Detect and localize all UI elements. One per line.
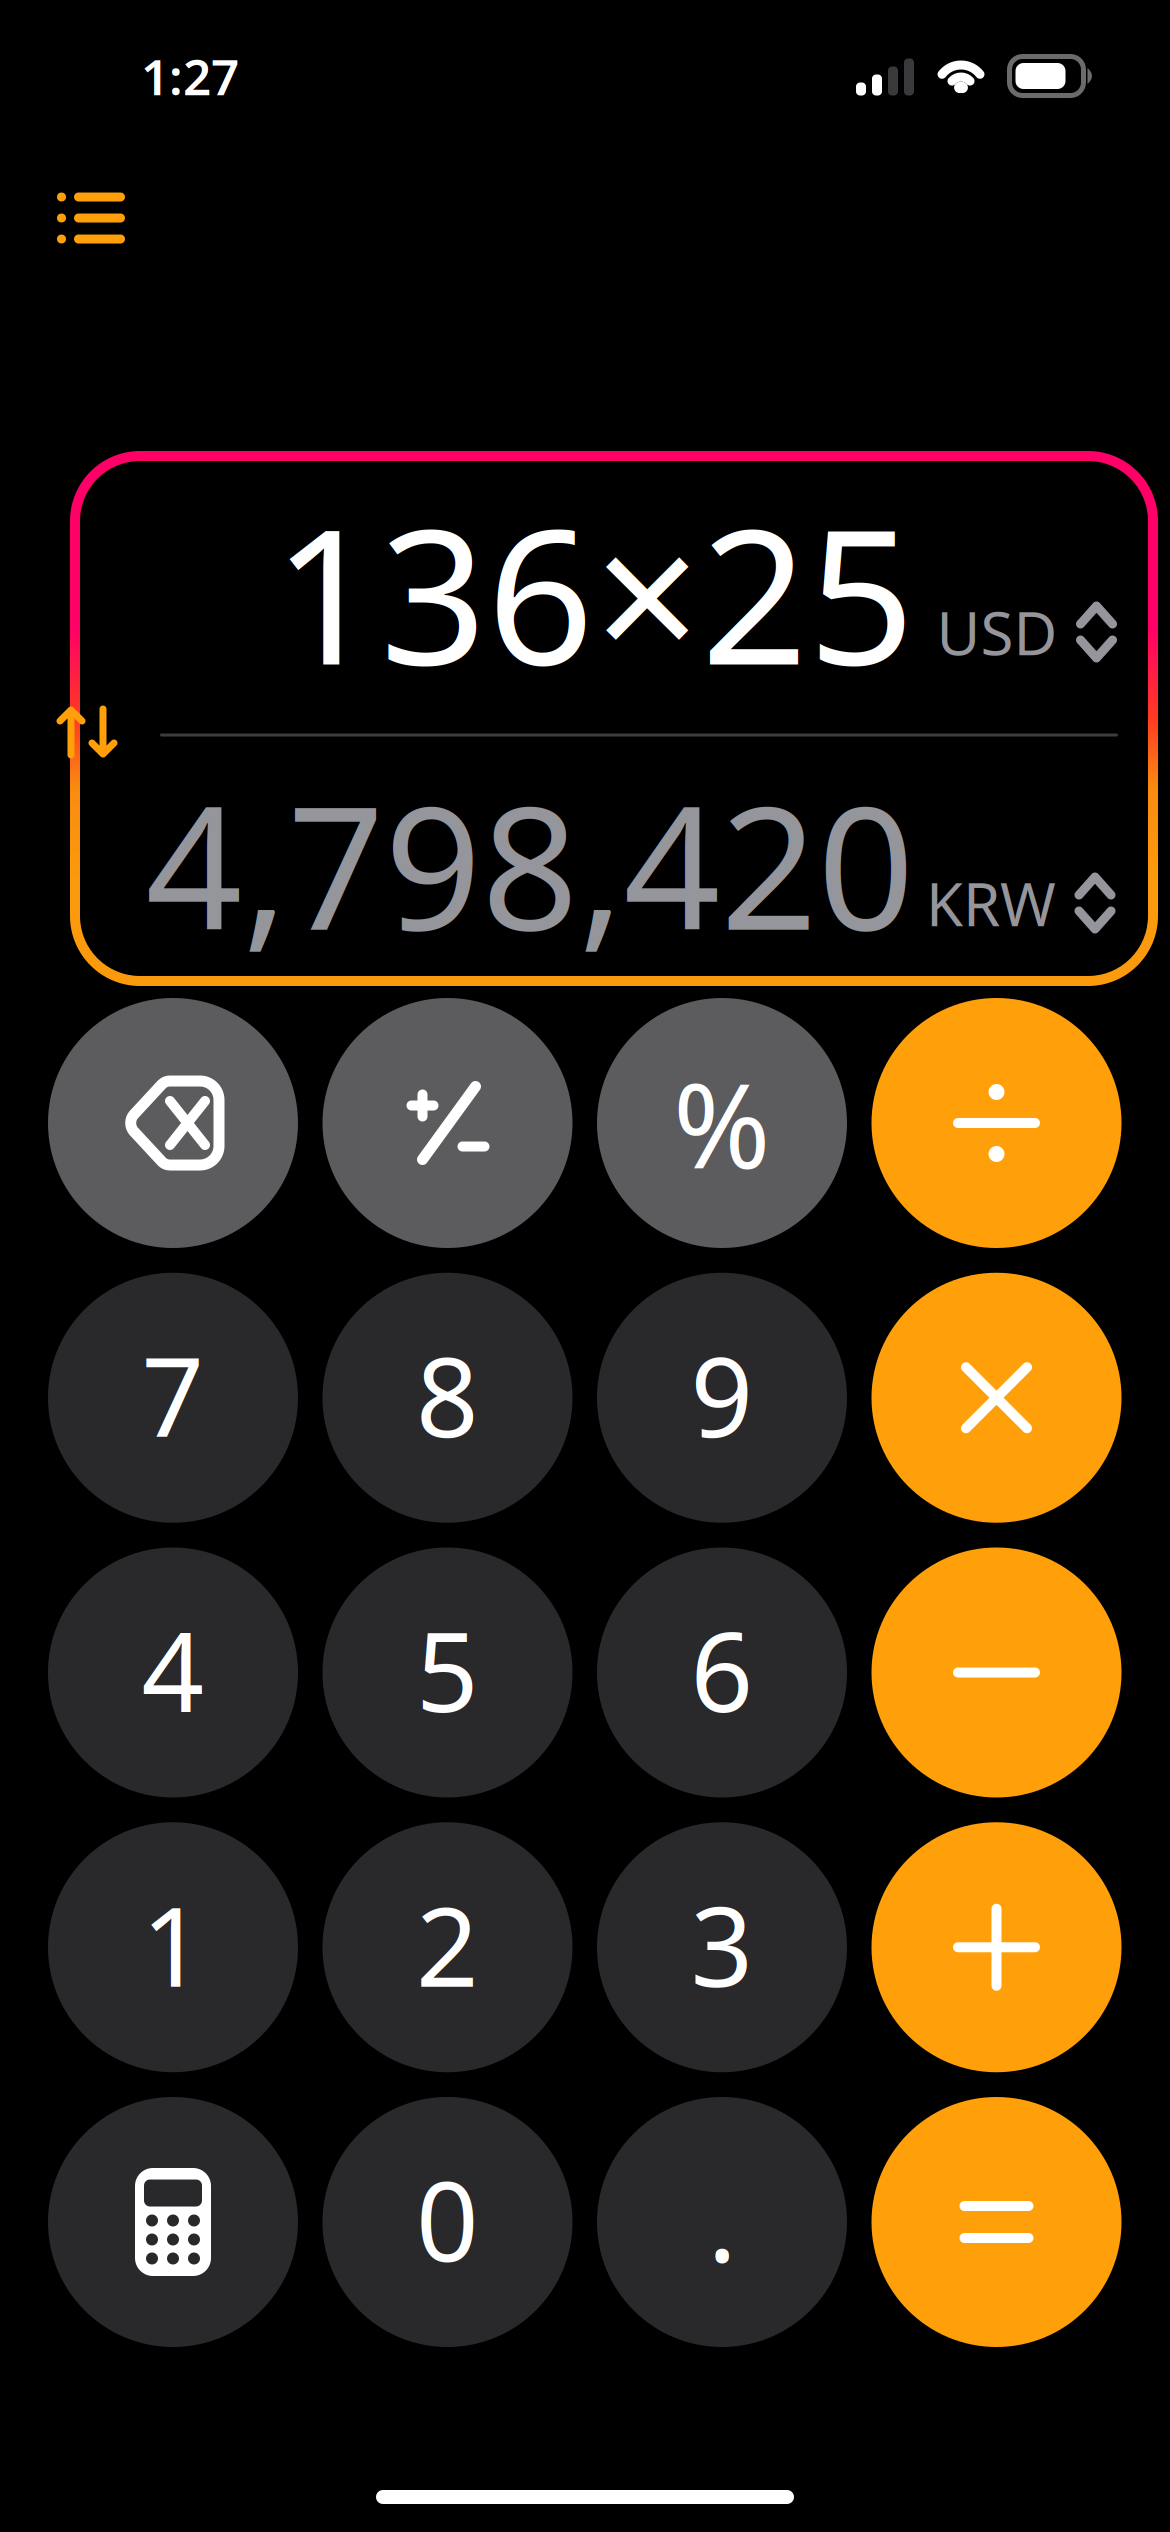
button[interactable]: History — [26, 163, 156, 273]
staticText: 136×25 — [273, 468, 915, 716]
button[interactable]: 9 — [597, 1273, 847, 1523]
button[interactable]: 7 — [48, 1273, 298, 1523]
staticText: 4 — [141, 1597, 204, 1742]
button[interactable]: Multiply — [871, 1273, 1121, 1523]
button[interactable]: Add — [871, 1822, 1121, 2072]
staticText: 7 — [141, 1322, 204, 1467]
button[interactable]: Toggle sign — [322, 998, 572, 1248]
button[interactable]: 6 — [597, 1547, 847, 1797]
staticText: 3 — [690, 1872, 753, 2017]
button[interactable]: 2 — [322, 1822, 572, 2072]
staticText: USD — [936, 592, 1057, 672]
staticText: 8 — [416, 1322, 479, 1467]
button[interactable]: Swap currencies — [32, 682, 142, 782]
button[interactable]: 1 — [48, 1822, 298, 2072]
button[interactable]: 0 — [322, 2097, 572, 2347]
staticText: 0 — [416, 2146, 479, 2292]
button[interactable]: 8 — [322, 1273, 572, 1523]
button[interactable]: . — [597, 2097, 847, 2347]
button[interactable]: Subtract — [871, 1547, 1121, 1797]
button[interactable]: Change KRW — [914, 851, 1128, 955]
staticText: 9 — [690, 1322, 753, 1467]
button[interactable]: Delete — [48, 998, 298, 1248]
staticText: 4,798,420 — [145, 752, 914, 976]
staticText: 2 — [416, 1872, 479, 2017]
staticText: 1:27 — [141, 43, 239, 109]
staticText: 6 — [690, 1597, 753, 1742]
staticText: 1 — [141, 1872, 204, 2017]
button[interactable]: Divide — [871, 998, 1121, 1248]
staticText: 5 — [416, 1597, 479, 1742]
button[interactable]: 5 — [322, 1547, 572, 1797]
staticText: . — [707, 2146, 736, 2292]
staticText: % — [673, 1045, 771, 1201]
button[interactable]: Calculator — [48, 2097, 298, 2347]
button[interactable]: 3 — [597, 1822, 847, 2072]
button[interactable]: Change USD — [924, 580, 1129, 684]
button[interactable]: Equals — [871, 2097, 1121, 2347]
button[interactable]: Percent — [597, 998, 847, 1248]
staticText: KRW — [926, 863, 1056, 943]
button[interactable]: 4 — [48, 1547, 298, 1797]
